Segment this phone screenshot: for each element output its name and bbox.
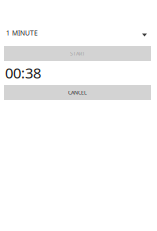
staticText: 00:38	[5, 63, 41, 82]
staticText: START	[70, 50, 85, 57]
staticText: 1 MINUTE	[6, 29, 38, 37]
staticText: CANCEL	[68, 89, 87, 96]
button[interactable]: CANCEL	[4, 85, 151, 100]
button[interactable]: 1 MINUTE	[6, 27, 147, 39]
